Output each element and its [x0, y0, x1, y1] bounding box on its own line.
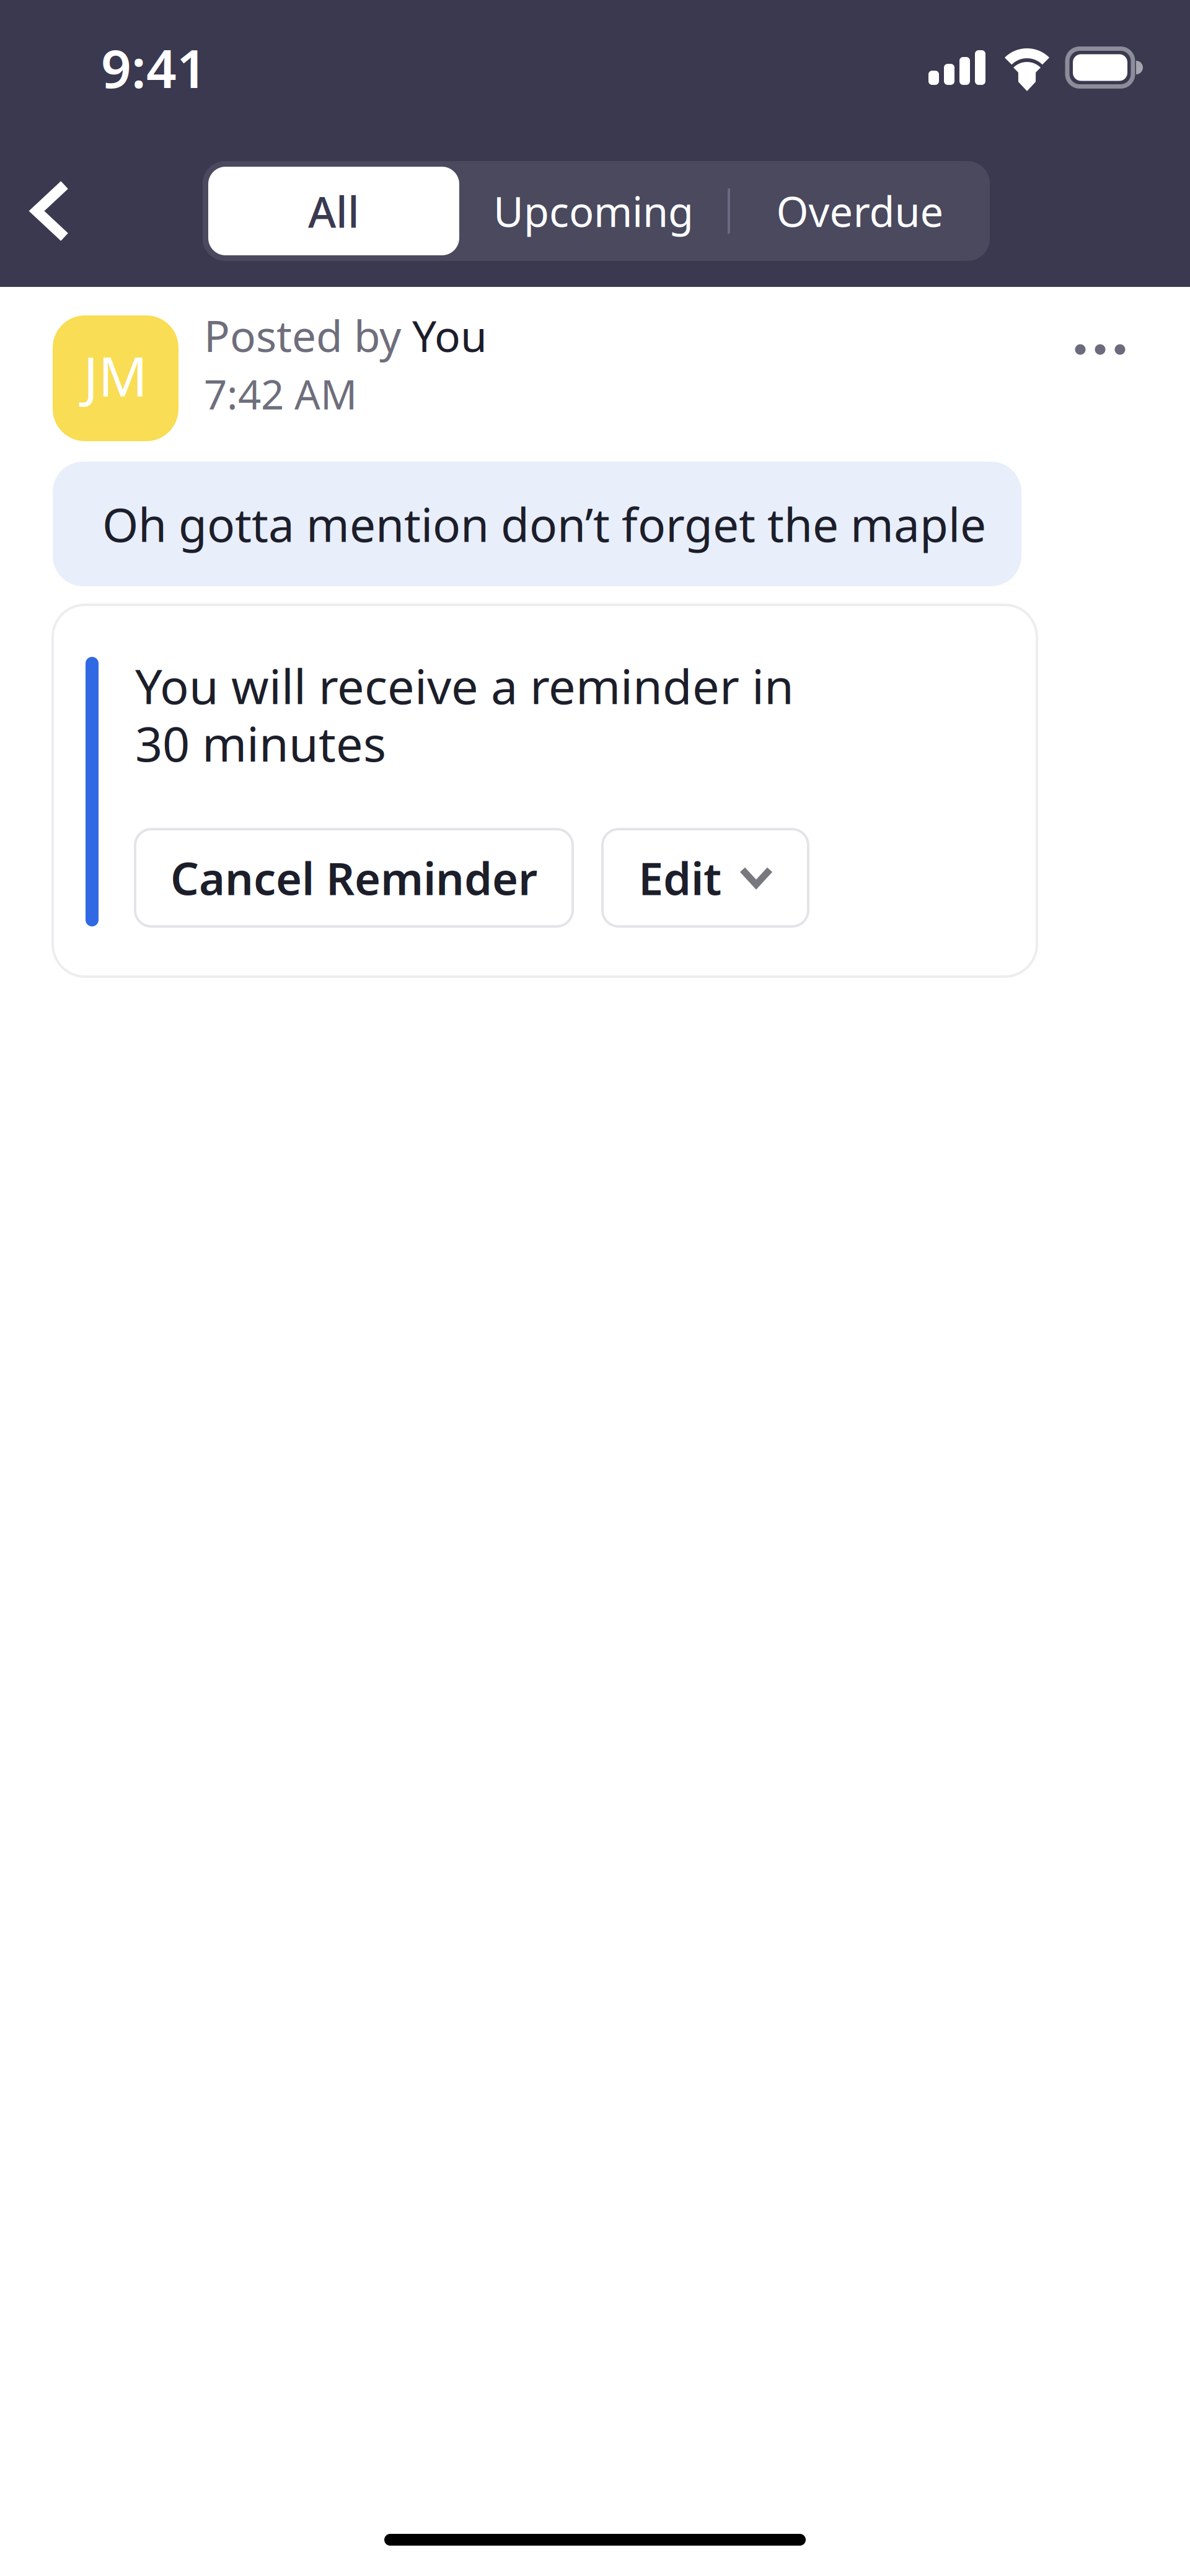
button[interactable]: Back	[3, 161, 97, 261]
staticText: Upcoming	[493, 184, 694, 238]
button[interactable]: Upcoming	[459, 161, 728, 261]
button[interactable]: All	[208, 167, 459, 255]
staticText: Overdue	[776, 184, 944, 238]
staticText: Edit	[638, 848, 721, 907]
button[interactable]: More options	[1063, 315, 1137, 384]
staticText: JM	[83, 339, 148, 411]
staticText: Cancel Reminder	[170, 848, 537, 907]
button[interactable]: Overdue	[730, 161, 990, 261]
staticText: 9:41	[101, 32, 207, 103]
staticText: Oh gotta mention don’t forget the maple	[102, 493, 986, 555]
button[interactable]: Edit	[602, 829, 808, 926]
staticText: 30 minutes	[135, 711, 386, 775]
staticText: You	[412, 307, 487, 364]
staticText: All	[308, 182, 359, 240]
button[interactable]: Cancel Reminder	[135, 829, 573, 926]
staticText: 7:42 AM	[204, 367, 357, 421]
staticText: Posted by	[204, 307, 412, 364]
staticText: You will receive a reminder in	[135, 654, 794, 717]
